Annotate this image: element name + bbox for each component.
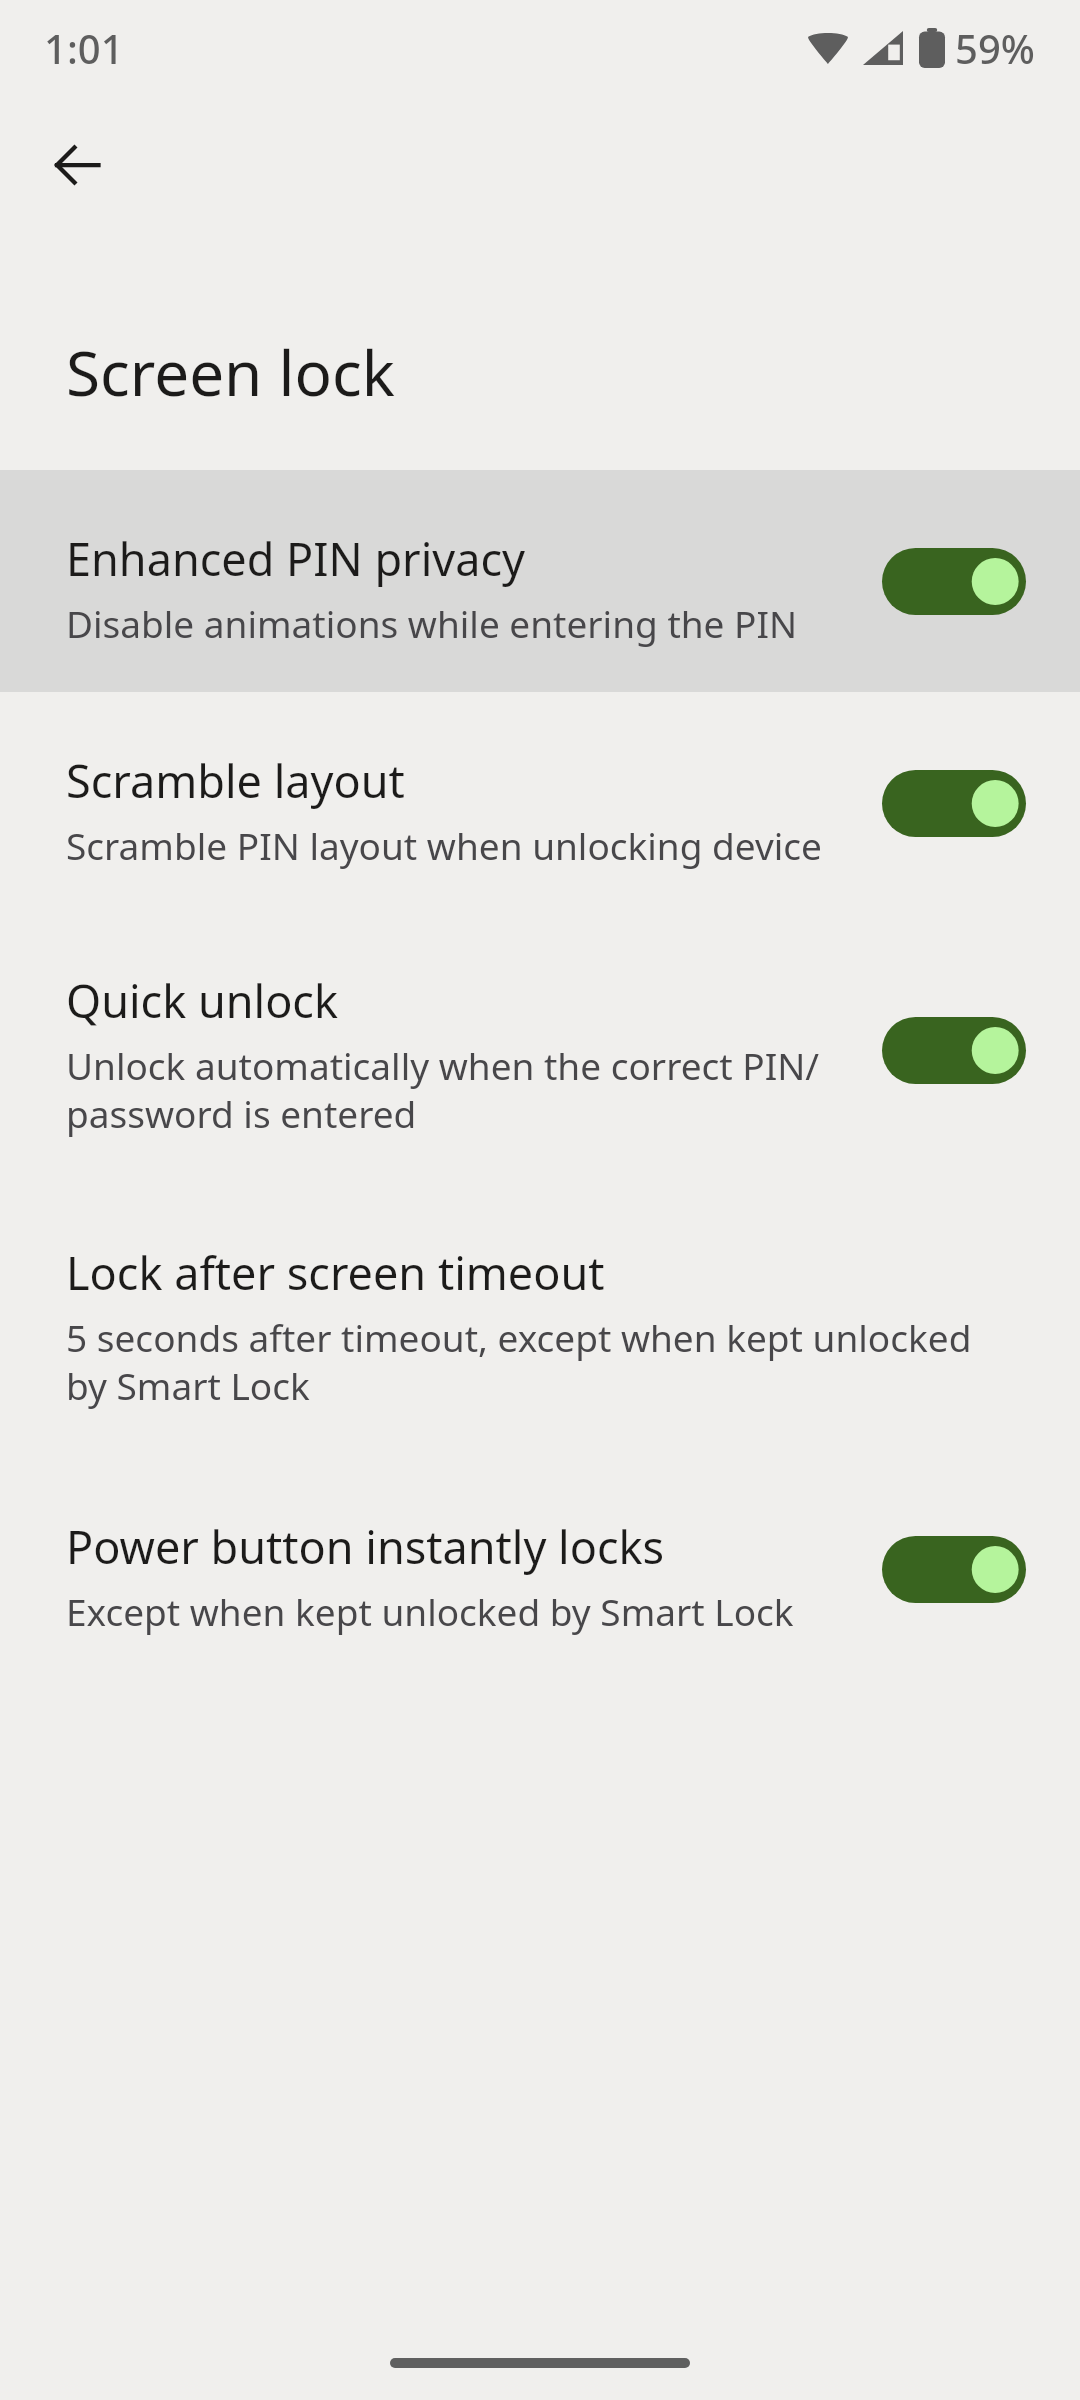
- staticText: Screen lock: [66, 330, 395, 414]
- button[interactable]: Power button instantly locks: [0, 1458, 1080, 1680]
- staticText: Lock after screen timeout: [66, 1242, 605, 1303]
- staticText: 1:01: [44, 21, 124, 75]
- button[interactable]: Scramble layout: [0, 692, 1080, 914]
- staticText: Disable animations while entering the PI…: [66, 598, 798, 648]
- staticText: Scramble PIN layout when unlocking devic…: [66, 820, 822, 870]
- staticText: Power button instantly locks: [66, 1516, 665, 1577]
- staticText: Except when kept unlocked by Smart Lock: [66, 1586, 794, 1636]
- staticText: Unlock automatically when the correct PI…: [66, 1040, 820, 1139]
- staticText: Enhanced PIN privacy: [66, 528, 525, 589]
- staticText: Quick unlock: [66, 970, 338, 1031]
- button[interactable]: Power button instantly locks toggle, on: [882, 1529, 1026, 1609]
- staticText: 5 seconds after timeout, except when kep…: [66, 1312, 972, 1411]
- button[interactable]: Quick unlock: [0, 914, 1080, 1186]
- staticText: 59%: [955, 21, 1035, 75]
- button[interactable]: Enhanced PIN privacy: [0, 470, 1080, 692]
- button[interactable]: Back: [22, 110, 132, 220]
- staticText: Scramble layout: [66, 750, 405, 811]
- button[interactable]: Lock after screen timeout: [0, 1186, 1080, 1458]
- button[interactable]: Enhanced PIN privacy toggle, on: [882, 541, 1026, 621]
- button[interactable]: Quick unlock toggle, on: [882, 1010, 1026, 1090]
- button[interactable]: Scramble layout toggle, on: [882, 763, 1026, 843]
